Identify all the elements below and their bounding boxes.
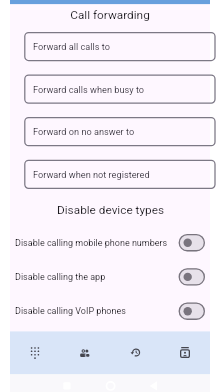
button[interactable]: Forward calls when busy to — [24, 75, 215, 104]
button[interactable]: Disable calling mobile phone numbers — [10, 226, 210, 260]
staticText: Call forwarding — [70, 8, 150, 22]
button[interactable]: Disable calling the app — [10, 260, 210, 294]
button[interactable]: Forward on no answer to — [24, 117, 215, 146]
staticText: Disable calling mobile phone numbers — [15, 238, 205, 249]
staticText: Forward on no answer to — [33, 126, 135, 137]
staticText: Disable device types — [57, 203, 164, 217]
button[interactable]: Forward when not registered — [24, 160, 215, 189]
staticText: Forward when not registered — [33, 169, 150, 180]
staticText: Disable calling the app — [15, 272, 205, 283]
button[interactable]: Voicemail — [160, 331, 210, 374]
button[interactable]: Forward all calls to — [24, 32, 215, 61]
staticText: Forward calls when busy to — [33, 84, 145, 95]
button[interactable]: Dialpad — [10, 331, 60, 374]
button[interactable]: Recents — [110, 331, 160, 374]
button[interactable]: Contacts — [60, 331, 110, 374]
staticText: Forward all calls to — [33, 41, 110, 52]
button[interactable]: Disable calling VoIP phones — [10, 294, 210, 328]
staticText: Disable calling VoIP phones — [15, 306, 205, 317]
